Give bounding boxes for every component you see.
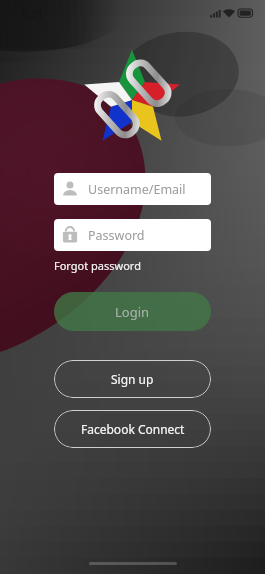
button[interactable]: Forgot password bbox=[54, 258, 141, 273]
button[interactable]: Login bbox=[54, 292, 211, 331]
button[interactable]: Username/Email bbox=[54, 173, 211, 205]
button[interactable]: Password bbox=[54, 219, 211, 251]
other: Status icons bbox=[210, 8, 253, 19]
staticText: Password bbox=[88, 227, 145, 244]
staticText: Login bbox=[115, 303, 150, 321]
button[interactable]: Facebook Connect bbox=[54, 410, 211, 448]
staticText: Facebook Connect bbox=[81, 421, 185, 437]
staticText: Sign up bbox=[111, 371, 154, 387]
staticText: Forgot password bbox=[54, 258, 141, 273]
button[interactable]: Sign up bbox=[54, 360, 211, 398]
staticText: Username/Email bbox=[88, 181, 186, 198]
